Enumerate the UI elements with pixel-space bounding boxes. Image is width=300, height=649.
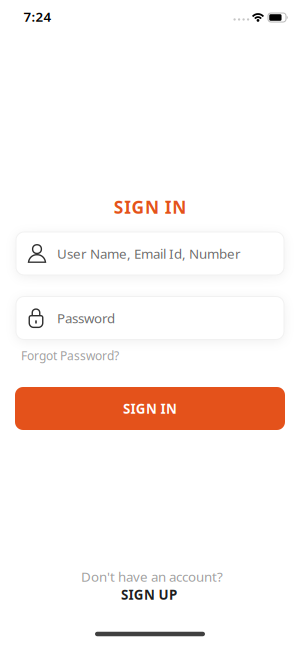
button[interactable]: User Name, Email Id, Number — [16, 232, 284, 275]
staticText: SIGN UP — [121, 586, 177, 603]
button[interactable]: Password — [16, 296, 284, 339]
staticText: Don't have an account? — [81, 568, 223, 585]
staticText: Password — [57, 309, 115, 327]
button[interactable]: SIGN IN — [15, 387, 285, 430]
button[interactable]: SIGN UP — [121, 586, 177, 603]
staticText: SIGN IN — [123, 400, 177, 417]
staticText: User Name, Email Id, Number — [57, 245, 241, 262]
staticText: Forgot Password? — [21, 347, 119, 363]
staticText: SIGN IN — [114, 195, 186, 218]
staticText: 7:24 — [23, 8, 51, 25]
button[interactable]: Forgot Password? — [21, 347, 119, 363]
